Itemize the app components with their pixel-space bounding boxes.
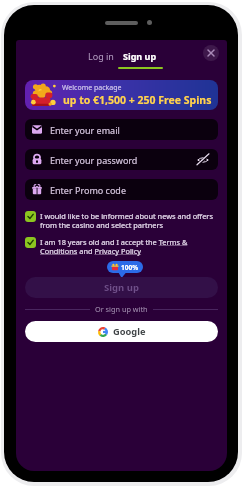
button[interactable]: I am 18 years old and I accept the Terms… xyxy=(25,237,218,256)
button[interactable]: Enter your password xyxy=(25,149,218,170)
staticText: I am 18 years old and I accept the Terms… xyxy=(40,237,218,256)
button[interactable]: I would like to be informed about news a… xyxy=(25,211,218,230)
staticText: Enter your password xyxy=(50,154,138,166)
button[interactable]: Enter Promo code xyxy=(25,179,218,200)
staticText: Log in xyxy=(88,50,114,62)
staticText: Enter Promo code xyxy=(50,184,126,196)
button[interactable]: Sign up xyxy=(117,46,163,66)
button[interactable]: Google xyxy=(25,321,218,342)
button[interactable]: Enter your email xyxy=(25,119,218,140)
staticText: Or sign up with xyxy=(95,304,148,314)
staticText: up to €1,500 + 250 Free Spins xyxy=(63,93,212,107)
button[interactable]: 100% xyxy=(107,261,143,273)
staticText: Sign up xyxy=(104,281,139,294)
button[interactable]: Log in xyxy=(82,46,120,66)
staticText: I would like to be informed about news a… xyxy=(40,211,218,230)
staticText: Welcome package xyxy=(62,83,122,93)
button[interactable]: Sign up xyxy=(25,277,218,298)
staticText: Sign up xyxy=(123,50,157,62)
button[interactable]: Show password xyxy=(194,151,212,169)
button[interactable]: Close xyxy=(203,45,219,61)
staticText: Enter your email xyxy=(50,124,120,136)
staticText: 100% xyxy=(121,263,139,272)
staticText: Google xyxy=(113,325,146,338)
button[interactable]: Welcome package xyxy=(25,80,218,110)
